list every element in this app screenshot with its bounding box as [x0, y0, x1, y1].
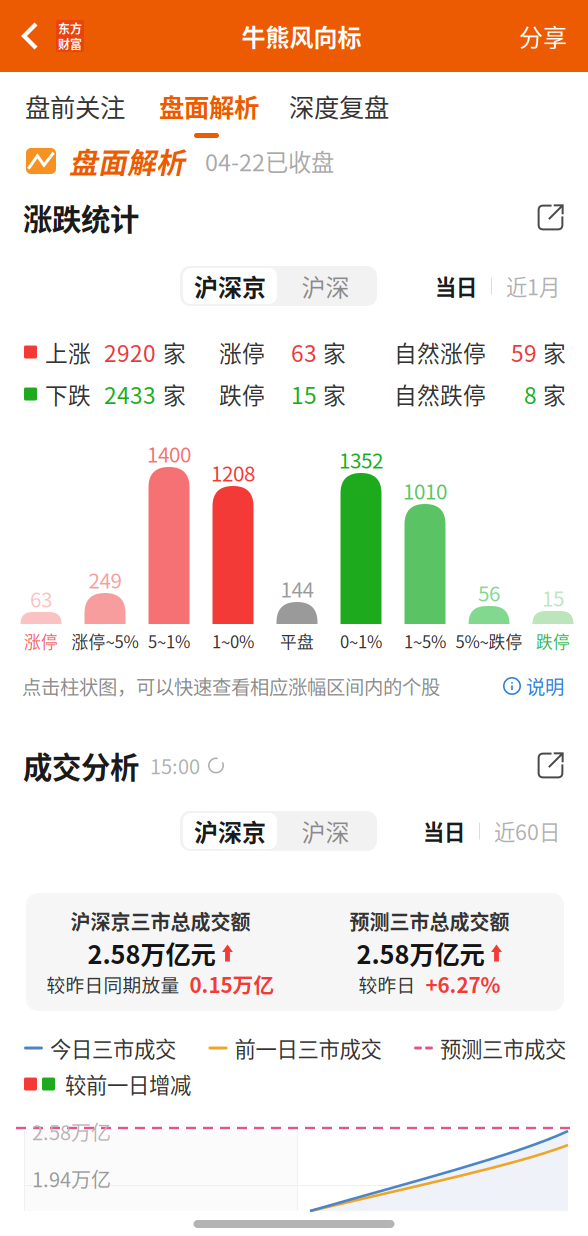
staticText: 深度复盘: [289, 88, 389, 124]
staticText: 15:00: [150, 751, 200, 780]
staticText: 8: [524, 378, 537, 410]
staticText: 东方: [58, 20, 82, 37]
staticText: 沪深京三市总成交额: [70, 906, 250, 935]
staticText: 牛熊风向标: [241, 19, 361, 53]
staticText: 1~5%: [404, 629, 446, 653]
staticText: 2433: [104, 378, 156, 410]
button[interactable]: 分享: [519, 0, 588, 72]
staticText: 盘面解析: [159, 88, 259, 124]
staticText: 成交分析: [23, 744, 139, 787]
staticText: 5%~跌停: [455, 629, 522, 653]
button[interactable]: 沪深: [277, 813, 374, 849]
staticText: 近1月: [506, 271, 560, 301]
staticText: 1208: [211, 457, 255, 487]
staticText: 盘前关注: [25, 88, 125, 124]
staticText: 1352: [339, 444, 383, 474]
staticText: 家: [163, 336, 186, 368]
staticText: 1~0%: [212, 629, 254, 653]
staticText: 家: [543, 378, 566, 410]
button[interactable]: 说明: [503, 664, 564, 708]
button[interactable]: 盘前关注: [0, 72, 149, 140]
staticText: 预测三市总成交额: [349, 906, 509, 935]
staticText: 63: [291, 336, 317, 368]
staticText: 2.58万亿元: [87, 935, 215, 971]
staticText: 涨停~5%: [71, 629, 138, 653]
staticText: 自然跌停: [394, 378, 486, 410]
staticText: 盘面解析: [69, 140, 185, 182]
staticText: 今日三市成交: [50, 1033, 176, 1063]
staticText: 144: [280, 573, 313, 603]
staticText: 跌停: [219, 378, 265, 410]
staticText: +6.27%: [425, 969, 500, 999]
button[interactable]: 返回: [0, 0, 84, 72]
button[interactable]: 近60日: [480, 813, 574, 849]
button[interactable]: 盘面解析: [149, 72, 269, 140]
staticText: 沪深: [301, 269, 349, 303]
staticText: 沪深京: [194, 814, 266, 848]
staticText: 63: [30, 583, 52, 613]
button[interactable]: 当日: [409, 813, 479, 849]
staticText: 近60日: [494, 816, 560, 846]
staticText: 自然涨停: [394, 336, 486, 368]
staticText: 跌停: [536, 629, 570, 653]
staticText: 当日: [423, 816, 465, 846]
staticText: 较昨日同期放量: [46, 970, 179, 997]
staticText: 下跌: [45, 378, 91, 410]
button[interactable]: 沪深京: [183, 813, 277, 849]
staticText: 2.58万亿元: [356, 935, 484, 971]
staticText: 平盘: [280, 629, 314, 653]
staticText: 上涨: [45, 336, 91, 368]
staticText: 说明: [526, 672, 564, 700]
staticText: 249: [88, 564, 121, 594]
staticText: 2920: [104, 336, 156, 368]
button[interactable]: 深度复盘: [269, 72, 409, 140]
staticText: 59: [511, 336, 537, 368]
button[interactable]: 沪深: [277, 268, 374, 304]
staticText: 1010: [403, 475, 447, 505]
staticText: 沪深京: [194, 269, 266, 303]
staticText: 点击柱状图，可以快速查看相应涨幅区间内的个股: [22, 672, 440, 700]
staticText: 分享: [519, 19, 567, 53]
staticText: 家: [323, 378, 346, 410]
staticText: 家: [323, 336, 346, 368]
staticText: 04-22已收盘: [205, 144, 334, 178]
staticText: 当日: [435, 271, 477, 301]
staticText: 0~1%: [340, 629, 382, 653]
staticText: 前一日三市成交: [234, 1033, 381, 1063]
button[interactable]: 近1月: [492, 268, 574, 304]
staticText: 涨停: [24, 629, 58, 653]
staticText: 0.15万亿: [189, 969, 274, 999]
staticText: 较昨日: [358, 970, 415, 997]
staticText: 涨停: [219, 336, 265, 368]
staticText: 15: [291, 378, 317, 410]
button[interactable]: 沪深京: [183, 268, 277, 304]
staticText: 5~1%: [148, 629, 190, 653]
staticText: 财富: [58, 35, 82, 52]
staticText: 沪深: [301, 814, 349, 848]
button[interactable]: 打开: [527, 742, 574, 789]
button[interactable]: 打开: [527, 194, 574, 241]
staticText: 1.94万亿: [32, 1164, 111, 1193]
staticText: 较前一日增减: [60, 1069, 191, 1099]
staticText: 1400: [147, 438, 191, 468]
button[interactable]: 当日: [421, 268, 491, 304]
staticText: 家: [543, 336, 566, 368]
staticText: 涨跌统计: [23, 196, 139, 239]
staticText: 15: [542, 582, 564, 612]
staticText: 2.58万亿: [32, 1117, 111, 1146]
staticText: 56: [478, 577, 500, 607]
staticText: 家: [163, 378, 186, 410]
staticText: 预测三市成交: [440, 1033, 566, 1063]
